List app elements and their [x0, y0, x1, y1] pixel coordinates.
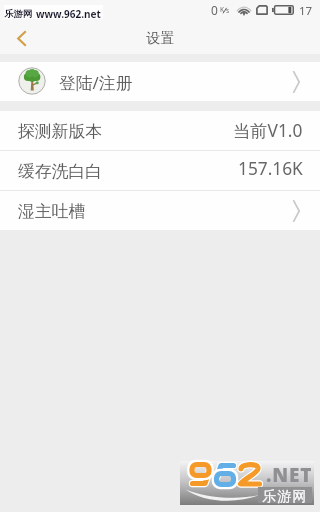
- staticText: 157.16K: [238, 157, 303, 181]
- staticText: 湿主吐槽: [18, 201, 86, 222]
- staticText: www.962.net: [36, 7, 101, 21]
- staticText: 登陆/注册: [59, 71, 133, 94]
- staticText: 探测新版本: [18, 121, 102, 142]
- staticText: 乐游网: [262, 488, 308, 504]
- staticText: 设置: [146, 29, 175, 47]
- staticText: .NET: [266, 462, 313, 488]
- staticText: 0: [211, 2, 218, 18]
- staticText: 17: [299, 3, 313, 19]
- button[interactable]: Back: [0, 20, 42, 54]
- button[interactable]: 湿主吐槽: [0, 191, 320, 230]
- staticText: K: [220, 5, 225, 14]
- button[interactable]: 缓存洗白白: [0, 151, 320, 190]
- button[interactable]: 登陆/注册: [0, 62, 320, 101]
- staticText: 乐游网: [4, 8, 33, 20]
- staticText: s: [226, 6, 230, 15]
- staticText: 缓存洗白白: [18, 161, 102, 182]
- button[interactable]: 探测新版本: [0, 111, 320, 150]
- staticText: 当前V1.0: [233, 119, 303, 143]
